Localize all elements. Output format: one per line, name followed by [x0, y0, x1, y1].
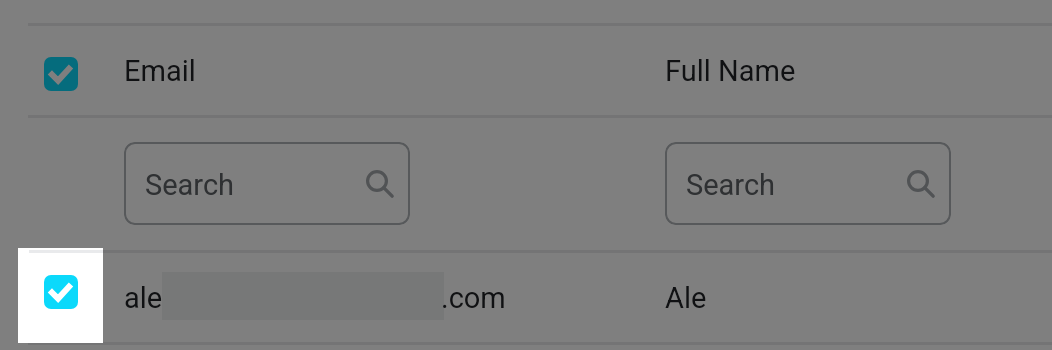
button[interactable]: ale: [110, 253, 570, 342]
button[interactable]: Search column: [124, 142, 410, 225]
staticText: Ale: [665, 281, 707, 315]
button[interactable]: Ale: [651, 253, 1031, 342]
button[interactable]: Dismiss tutorial overlay: [0, 0, 1052, 350]
button[interactable]: Select all rows: [44, 57, 78, 91]
button[interactable]: Select row: [44, 276, 78, 310]
staticText: Search: [145, 168, 235, 202]
staticText: Full Name: [665, 54, 796, 88]
button[interactable]: Full Name: [651, 26, 1031, 114]
button[interactable]: Select row: [44, 275, 78, 309]
button[interactable]: Search column: [665, 142, 951, 225]
button[interactable]: Email: [110, 26, 570, 114]
staticText: Email: [124, 54, 196, 88]
staticText: Search: [686, 168, 776, 202]
staticText: .com: [441, 281, 506, 315]
staticText: ale: [124, 281, 163, 315]
